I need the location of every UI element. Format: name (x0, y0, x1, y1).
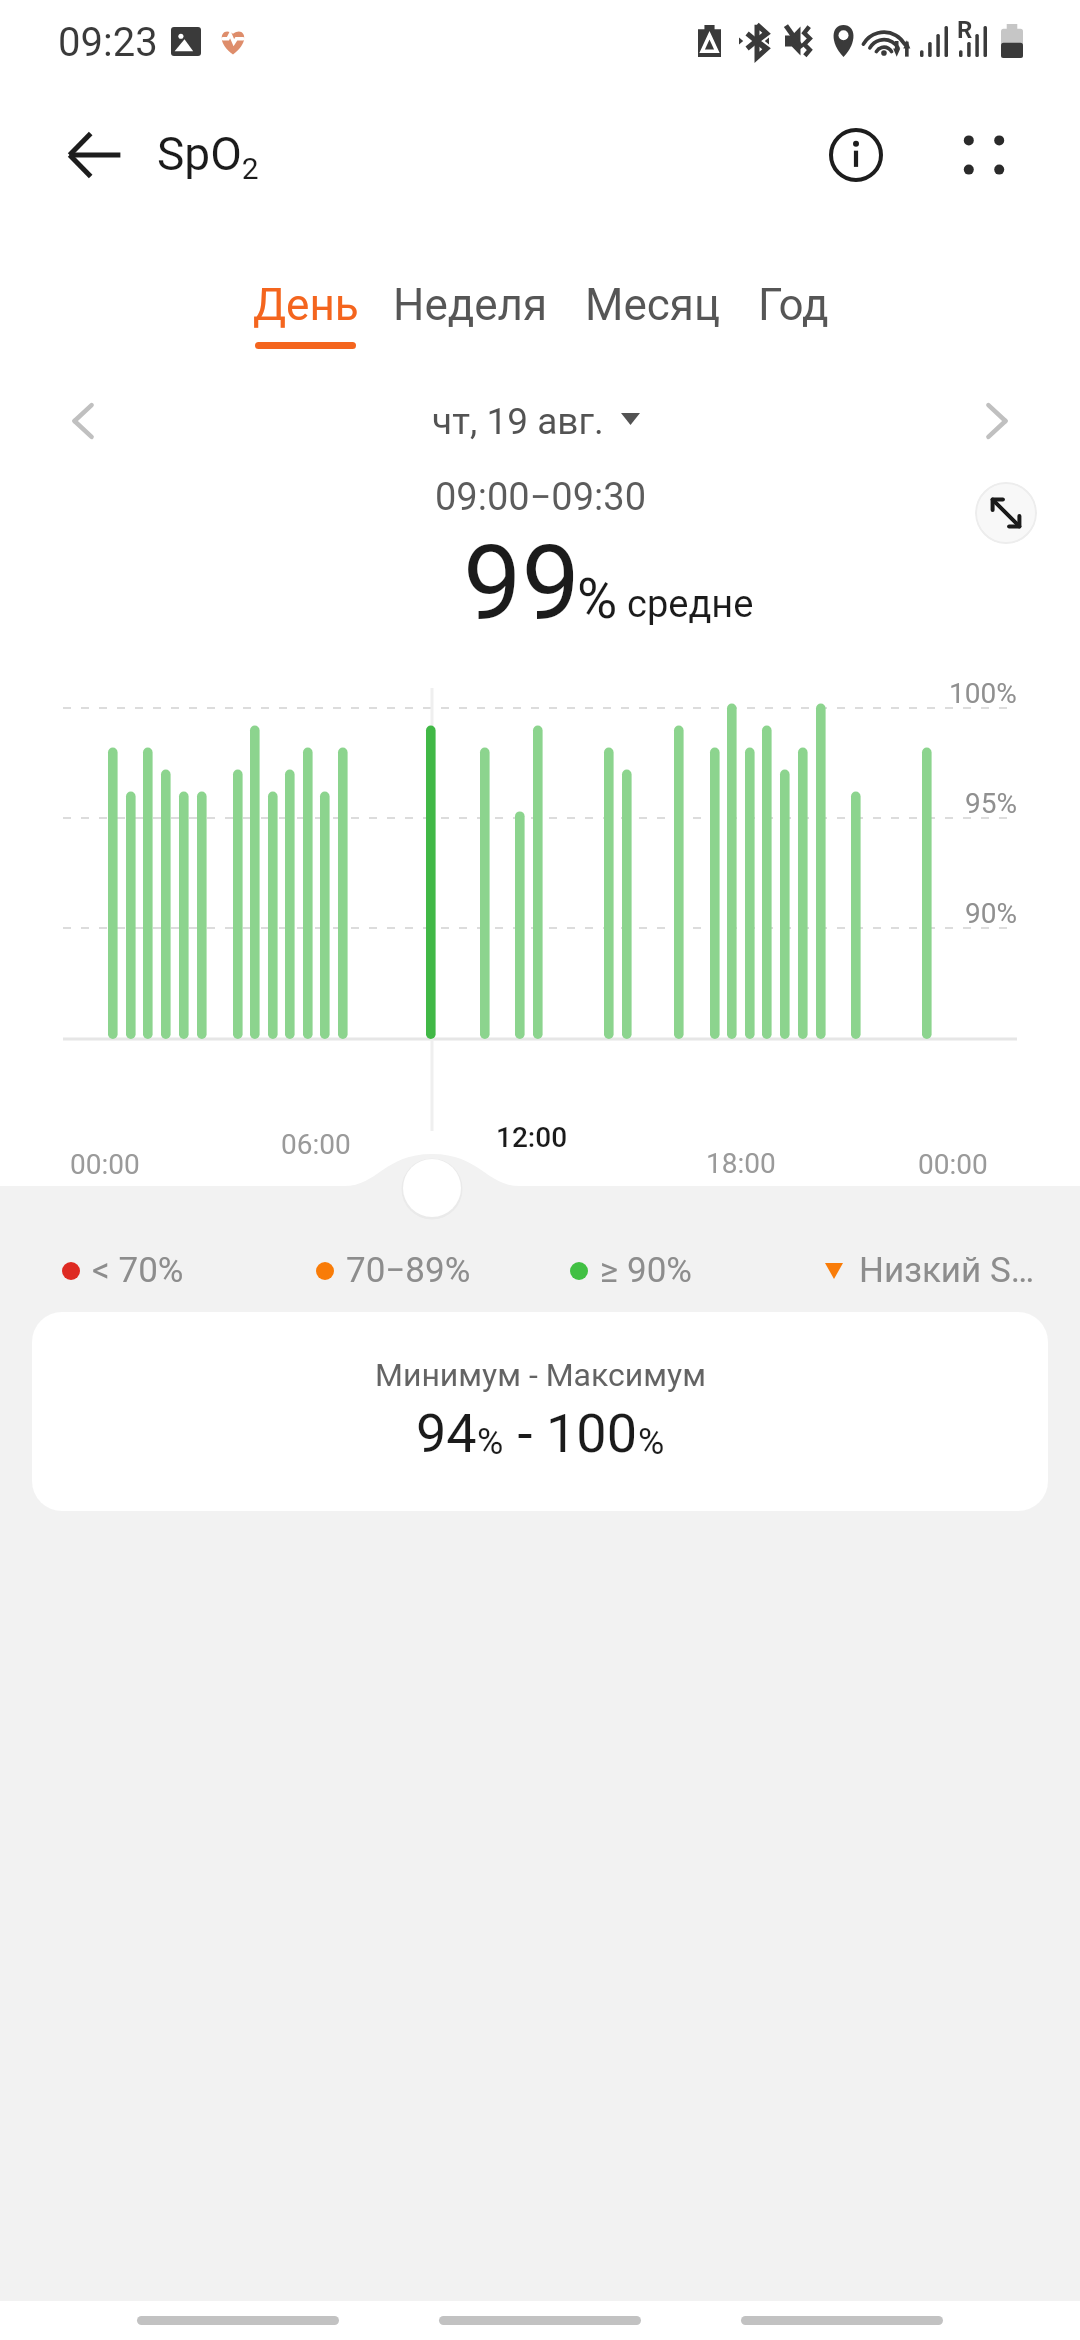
staticText: 18:00 (706, 1147, 776, 1180)
button[interactable]: Next day (960, 385, 1032, 457)
button[interactable]: Месяц (567, 272, 739, 350)
staticText: День (253, 279, 359, 331)
staticText: среднe (627, 582, 754, 627)
staticText: 00:00 (70, 1148, 140, 1181)
button[interactable]: 70−89% (316, 1246, 471, 1296)
staticText: 95% (965, 787, 1017, 820)
staticText: чт, 19 авг. (432, 400, 604, 443)
button[interactable]: чт, 19 авг. (396, 385, 676, 457)
staticText: 90% (965, 897, 1017, 930)
button[interactable]: Info (814, 113, 898, 197)
staticText: 06:00 (281, 1128, 351, 1161)
button[interactable]: Неделя (377, 272, 564, 350)
staticText: 09:00−09:30 (435, 475, 646, 520)
staticText: 70−89% (346, 1250, 471, 1291)
staticText: < 70% (92, 1250, 184, 1291)
staticText: ≥ 90% (600, 1250, 692, 1291)
staticText: 99 (463, 523, 580, 645)
staticText: Минимум - Максимум (375, 1356, 706, 1394)
button[interactable]: Expand chart (975, 482, 1037, 544)
button[interactable] (32, 1312, 1048, 1511)
button[interactable]: Год (739, 272, 848, 350)
staticText: Неделя (393, 279, 548, 331)
staticText: Низкий S… (859, 1250, 1035, 1291)
button[interactable]: Previous day (48, 385, 120, 457)
staticText: 94 (416, 1402, 477, 1465)
staticText: R (957, 16, 973, 44)
button[interactable]: < 70% (62, 1246, 184, 1296)
staticText: Месяц (585, 279, 721, 331)
staticText: 100 (546, 1402, 638, 1465)
staticText: SpO2 (157, 127, 259, 186)
staticText: - (504, 1402, 546, 1465)
button[interactable]: Низкий S… (825, 1246, 1035, 1296)
staticText: 100% (949, 677, 1017, 710)
staticText: 12:00 (496, 1121, 568, 1154)
staticText: 00:00 (918, 1148, 988, 1181)
button[interactable]: Back (53, 113, 137, 197)
staticText: % (477, 1421, 504, 1463)
staticText: Год (758, 279, 829, 331)
button[interactable]: More options (942, 113, 1026, 197)
button[interactable]: День (236, 272, 376, 350)
button[interactable]: ≥ 90% (570, 1246, 692, 1296)
staticText: % (577, 567, 618, 631)
staticText: % (638, 1421, 665, 1463)
staticText: 09:23 (58, 19, 158, 66)
